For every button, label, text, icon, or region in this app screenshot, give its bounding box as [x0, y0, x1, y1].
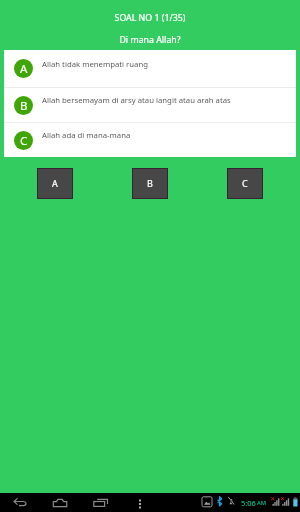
- staticText: A: [20, 61, 28, 77]
- button[interactable]: C: [4, 123, 296, 158]
- button[interactable]: More options: [128, 493, 152, 512]
- button[interactable]: A: [38, 169, 72, 198]
- staticText: B: [147, 177, 153, 189]
- staticText: Allah bersemayam di arsy atau langit ata…: [42, 95, 231, 106]
- button[interactable]: Recent apps: [81, 493, 121, 512]
- staticText: AM: [257, 499, 266, 507]
- staticText: 5:06: [241, 498, 256, 508]
- staticText: SOAL NO 1 (1/35): [0, 12, 300, 24]
- staticText: C: [20, 133, 28, 149]
- button[interactable]: A: [4, 50, 296, 87]
- staticText: A: [52, 177, 58, 189]
- button[interactable]: B: [4, 88, 296, 122]
- staticText: Allah ada di mana-mana: [42, 130, 131, 141]
- button[interactable]: Back: [0, 493, 40, 512]
- button[interactable]: C: [228, 169, 262, 198]
- button[interactable]: B: [133, 169, 167, 198]
- staticText: Allah tidak menempati ruang: [42, 59, 149, 70]
- staticText: B: [20, 98, 28, 114]
- staticText: C: [242, 177, 248, 189]
- staticText: Di mana Allah?: [0, 34, 300, 46]
- button[interactable]: Home: [40, 493, 80, 512]
